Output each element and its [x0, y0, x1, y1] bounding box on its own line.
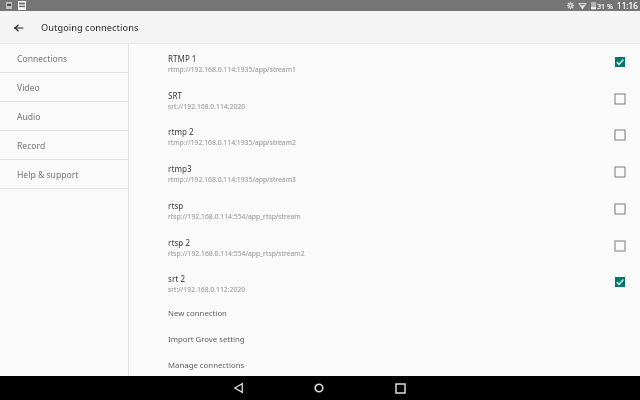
staticText: New connection: [168, 308, 227, 319]
button[interactable]: rtsp: [129, 195, 640, 232]
staticText: rtmp://192.168.0.114:1935/app/stream3: [168, 175, 296, 184]
button[interactable]: Back: [221, 376, 255, 400]
button[interactable]: Enable rtmp3: [611, 163, 629, 181]
staticText: Import Grove setting: [168, 334, 245, 345]
staticText: rtmp://192.168.0.114:1935/app/stream1: [168, 65, 296, 74]
staticText: Record: [17, 140, 46, 152]
staticText: rtmp 2: [168, 126, 194, 137]
staticText: rtsp://192.168.0.114:554/app_rtsp/stream…: [168, 249, 305, 258]
staticText: Help & support: [17, 169, 79, 181]
staticText: rtmp3: [168, 163, 192, 174]
staticText: rtmp://192.168.0.114:1935/app/stream2: [168, 138, 296, 147]
button[interactable]: Enable rtsp 2: [611, 237, 629, 255]
staticText: rtsp: [168, 200, 184, 211]
button[interactable]: Recent apps: [383, 376, 417, 400]
button[interactable]: Record: [0, 131, 128, 160]
staticText: rtsp://192.168.0.114:554/app_rtsp/stream: [168, 212, 301, 221]
button[interactable]: Enable rtmp 2: [611, 126, 629, 144]
button[interactable]: srt 2: [129, 268, 640, 305]
staticText: rtsp 2: [168, 237, 190, 248]
button[interactable]: Help & support: [0, 160, 128, 189]
staticText: srt 2: [168, 273, 185, 284]
staticText: Audio: [17, 111, 41, 123]
button[interactable]: New connection: [129, 300, 640, 326]
button[interactable]: Enable srt 2: [611, 273, 629, 291]
staticText: srt://192.168.0.114:2020: [168, 102, 246, 111]
staticText: SRT: [168, 90, 182, 101]
button[interactable]: Home: [302, 376, 336, 400]
staticText: Outgoing connections: [41, 21, 139, 34]
button[interactable]: Enable RTMP 1: [611, 53, 629, 71]
button[interactable]: Enable SRT: [611, 90, 629, 108]
button[interactable]: SRT: [129, 85, 640, 122]
button[interactable]: Manage connections: [129, 352, 640, 378]
staticText: Manage connections: [168, 360, 245, 371]
button[interactable]: Video: [0, 73, 128, 102]
staticText: Video: [17, 82, 40, 94]
button[interactable]: Connections: [0, 44, 128, 73]
staticText: 31 %: [597, 1, 614, 11]
staticText: 11:16: [617, 0, 638, 11]
button[interactable]: Enable rtsp: [611, 200, 629, 218]
button[interactable]: rtsp 2: [129, 232, 640, 269]
staticText: RTMP 1: [168, 53, 197, 64]
button[interactable]: rtmp3: [129, 158, 640, 195]
button[interactable]: rtmp 2: [129, 121, 640, 158]
staticText: srt://192.168.0.112:2020: [168, 285, 246, 294]
button[interactable]: Import Grove setting: [129, 326, 640, 352]
button[interactable]: Audio: [0, 102, 128, 131]
button[interactable]: RTMP 1: [129, 48, 640, 85]
button[interactable]: Back: [7, 16, 30, 39]
staticText: Connections: [17, 53, 68, 65]
